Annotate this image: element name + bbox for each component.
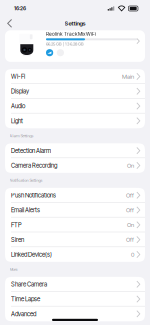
button[interactable]: FTP	[5, 217, 145, 232]
staticText: Main	[122, 73, 134, 80]
button[interactable]: Display	[5, 84, 145, 99]
staticText: Audio	[11, 102, 25, 110]
staticText: More	[9, 267, 17, 272]
button[interactable]: Email Alerts	[5, 203, 145, 217]
button[interactable]: Wi-Fi	[5, 69, 145, 84]
button[interactable]: Back	[0, 17, 18, 30]
staticText: Time Lapse	[11, 295, 40, 303]
button[interactable]: Detection Alarm	[5, 143, 145, 158]
staticText: Linked Device(s)	[11, 251, 52, 258]
staticText: Siren	[11, 236, 24, 243]
staticText: On	[127, 221, 134, 228]
staticText: Light	[11, 117, 23, 125]
staticText: Camera Recording	[11, 162, 57, 169]
button[interactable]: Push Notifications	[5, 188, 145, 203]
button[interactable]: Audio	[5, 99, 145, 113]
staticText: 16:26	[14, 5, 26, 11]
button[interactable]: Siren	[5, 232, 145, 247]
staticText: Settings	[64, 20, 85, 27]
staticText: Off	[126, 207, 134, 214]
button[interactable]: Time Lapse	[5, 292, 145, 306]
staticText: Wi-Fi	[11, 73, 25, 80]
staticText: Email Alerts	[11, 206, 40, 214]
staticText: Alarm Settings	[9, 133, 33, 138]
button[interactable]: Share Camera	[5, 277, 145, 292]
staticText: Off	[126, 236, 134, 243]
staticText: Off	[126, 192, 134, 199]
button[interactable]: Advanced	[5, 306, 145, 321]
staticText: Notification Settings	[9, 178, 42, 183]
staticText: Advanced	[11, 310, 36, 318]
button[interactable]: Light	[5, 113, 145, 128]
staticText: Push Notifications	[11, 192, 56, 199]
button[interactable]: Linked Device(s)	[5, 247, 145, 262]
staticText: 66.25 GB | 136.28 GB	[46, 41, 84, 47]
staticText: On	[127, 162, 134, 169]
staticText: Reolink TrackMix WiFi	[46, 31, 96, 37]
staticText: Display	[11, 88, 29, 95]
staticText: 0	[131, 251, 134, 258]
button[interactable]: Reolink TrackMix WiFi	[0, 30, 150, 62]
staticText: Detection Alarm	[11, 147, 51, 154]
staticText: Share Camera	[11, 281, 47, 288]
button[interactable]: Camera Recording	[5, 158, 145, 173]
staticText: FTP	[11, 221, 22, 229]
